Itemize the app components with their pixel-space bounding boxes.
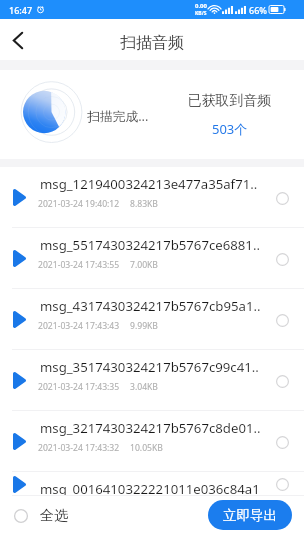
- staticText: 16:47: [9, 4, 33, 16]
- staticText: msg_1219400324213e477a35af71..: [40, 175, 272, 193]
- button[interactable]: 立即导出: [208, 500, 292, 530]
- button[interactable]: Select file: [268, 245, 296, 273]
- button[interactable]: Back: [0, 22, 36, 58]
- staticText: 0.00: [195, 2, 207, 10]
- button[interactable]: msg_3517430324217b5767c99c41..: [0, 350, 304, 411]
- staticText: 立即导出: [223, 507, 277, 524]
- staticText: 8.83KB: [130, 198, 158, 210]
- button[interactable]: msg_0016410322221011e036c84a1: [0, 472, 304, 496]
- staticText: 2021-03-24 17:43:55: [38, 259, 120, 271]
- staticText: 2021-03-24 19:40:12: [38, 198, 120, 210]
- button[interactable]: Select file: [268, 184, 296, 212]
- button[interactable]: msg_1219400324213e477a35af71..: [0, 167, 304, 228]
- staticText: 503个: [212, 120, 248, 138]
- button[interactable]: Select file: [268, 472, 296, 496]
- staticText: 2021-03-24 17:43:43: [38, 320, 120, 332]
- staticText: 2021-03-24 17:43:32: [38, 442, 120, 454]
- staticText: 3.04KB: [130, 381, 158, 393]
- staticText: 扫描音频: [120, 33, 184, 53]
- button[interactable]: msg_5517430324217b5767ce6881..: [0, 228, 304, 289]
- button[interactable]: msg_4317430324217b5767cb95a1..: [0, 289, 304, 350]
- button[interactable]: Select file: [268, 428, 296, 456]
- staticText: KB/S: [195, 10, 207, 17]
- staticText: 全选: [40, 507, 68, 525]
- staticText: msg_5517430324217b5767ce6881..: [40, 236, 272, 254]
- staticText: 7.00KB: [130, 259, 158, 271]
- button[interactable]: Select file: [268, 306, 296, 334]
- staticText: msg_0016410322221011e036c84a1: [40, 480, 272, 496]
- staticText: 2021-03-24 17:43:35: [38, 381, 120, 393]
- staticText: msg_3517430324217b5767c99c41..: [40, 358, 272, 376]
- staticText: 扫描完成...: [87, 107, 149, 124]
- button[interactable]: msg_3217430324217b5767c8de01..: [0, 411, 304, 472]
- staticText: msg_4317430324217b5767cb95a1..: [40, 297, 272, 315]
- staticText: 已获取到音频: [188, 92, 271, 109]
- staticText: 66%: [249, 4, 267, 16]
- button[interactable]: Select file: [268, 367, 296, 395]
- staticText: 9.99KB: [130, 320, 158, 332]
- button[interactable]: 全选: [8, 501, 74, 531]
- staticText: 10.05KB: [130, 442, 163, 454]
- staticText: msg_3217430324217b5767c8de01..: [40, 419, 272, 437]
